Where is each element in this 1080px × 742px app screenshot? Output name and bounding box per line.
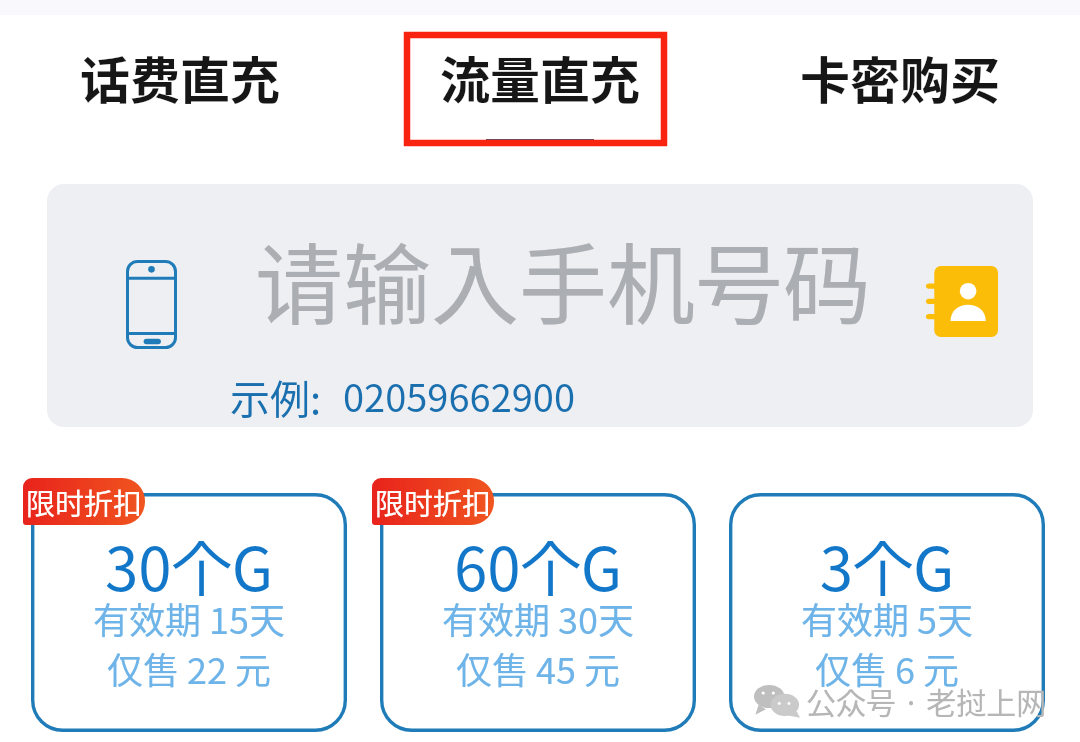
staticText: 卡密购买 bbox=[800, 41, 1000, 113]
button[interactable]: 30个G bbox=[31, 493, 347, 732]
staticText: 仅售 6 元 bbox=[729, 642, 1045, 694]
staticText: 有效期 15天 bbox=[31, 592, 347, 644]
staticText: 60个G bbox=[380, 521, 696, 608]
staticText: 仅售 45 元 bbox=[380, 642, 696, 694]
staticText: 示例: bbox=[230, 368, 322, 426]
staticText: 有效期 30天 bbox=[380, 592, 696, 644]
staticText: 限时折扣 bbox=[26, 481, 143, 523]
staticText: 流量直充 bbox=[440, 41, 640, 113]
staticText: 有效期 5天 bbox=[729, 592, 1045, 644]
button[interactable]: 请输入手机号码 bbox=[47, 184, 1033, 427]
button[interactable]: 3个G bbox=[729, 493, 1045, 732]
staticText: 3个G bbox=[729, 521, 1045, 608]
staticText: 30个G bbox=[31, 521, 347, 608]
staticText: 话费直充 bbox=[80, 41, 280, 113]
button[interactable]: 流量直充 bbox=[360, 15, 720, 145]
button[interactable]: 话费直充 bbox=[0, 15, 360, 145]
staticText: 仅售 22 元 bbox=[31, 642, 347, 694]
staticText: 公众号 · 老挝上网 bbox=[806, 679, 1047, 722]
staticText: 02059662900 bbox=[343, 368, 575, 423]
staticText: 请输入手机号码 bbox=[255, 215, 872, 342]
staticText: 限时折扣 bbox=[375, 481, 492, 523]
button[interactable]: 60个G bbox=[380, 493, 696, 732]
button[interactable]: Choose from contacts bbox=[926, 266, 998, 337]
button[interactable]: 卡密购买 bbox=[720, 15, 1080, 145]
